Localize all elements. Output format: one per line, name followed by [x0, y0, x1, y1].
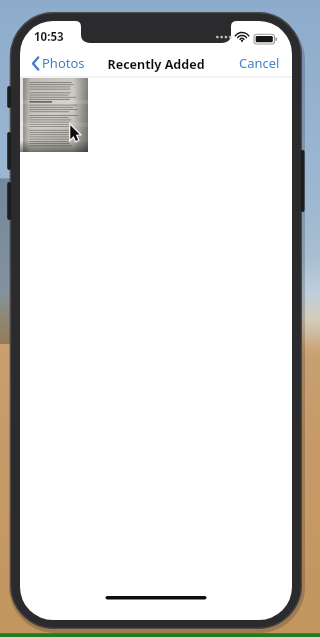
- staticText: 10:53: [34, 29, 64, 45]
- staticText: Recently Added: [20, 56, 292, 620]
- button[interactable]: Cancel: [237, 49, 282, 77]
- staticText: Cancel: [239, 54, 280, 72]
- button[interactable]: Photos: [28, 49, 89, 77]
- staticText: Photos: [42, 54, 85, 72]
- button[interactable]: Scanned document photo: [20, 78, 88, 152]
